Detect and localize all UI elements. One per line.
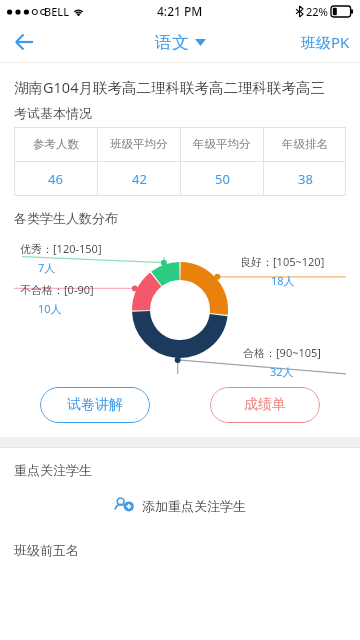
staticText: 语文: [155, 32, 189, 53]
staticText: 22%: [306, 4, 328, 19]
staticText: 班级前五名: [14, 542, 79, 558]
button[interactable]: 成绩单: [210, 387, 320, 423]
staticText: 班级PK: [301, 32, 350, 52]
staticText: 50: [215, 170, 230, 188]
staticText: 添加重点关注学生: [142, 498, 246, 514]
staticText: 优秀：[120-150]: [20, 241, 102, 256]
staticText: 班级平均分: [110, 137, 168, 151]
staticText: 4:21 PM: [157, 3, 203, 19]
staticText: 试卷讲解: [67, 396, 123, 414]
button[interactable]: 试卷讲解: [40, 387, 150, 423]
staticText: 年级排名: [282, 137, 328, 151]
staticText: 湖南G104月联考高二理科联考高二理科联考高三: [14, 77, 325, 97]
staticText: 42: [132, 170, 147, 188]
staticText: 46: [48, 170, 63, 188]
button[interactable]: Back: [0, 22, 48, 62]
staticText: 参考人数: [33, 137, 79, 151]
button[interactable]: 添加重点关注学生: [114, 496, 246, 516]
staticText: 良好：[105~120]: [240, 254, 325, 269]
staticText: 考试基本情况: [14, 105, 92, 121]
staticText: 7人: [38, 260, 56, 275]
staticText: 成绩单: [244, 396, 286, 414]
staticText: 38: [298, 170, 313, 188]
staticText: BELL: [44, 4, 70, 19]
staticText: 重点关注学生: [14, 462, 92, 478]
staticText: 合格：[90~105]: [243, 345, 321, 360]
staticText: 18人: [271, 273, 295, 288]
button[interactable]: 语文: [155, 32, 206, 53]
staticText: 10人: [38, 301, 62, 316]
staticText: 不合格：[0-90]: [20, 282, 94, 297]
staticText: 32人: [270, 364, 294, 379]
staticText: 年级平均分: [193, 137, 251, 151]
staticText: 各类学生人数分布: [14, 210, 118, 226]
button[interactable]: 班级PK: [301, 32, 350, 52]
